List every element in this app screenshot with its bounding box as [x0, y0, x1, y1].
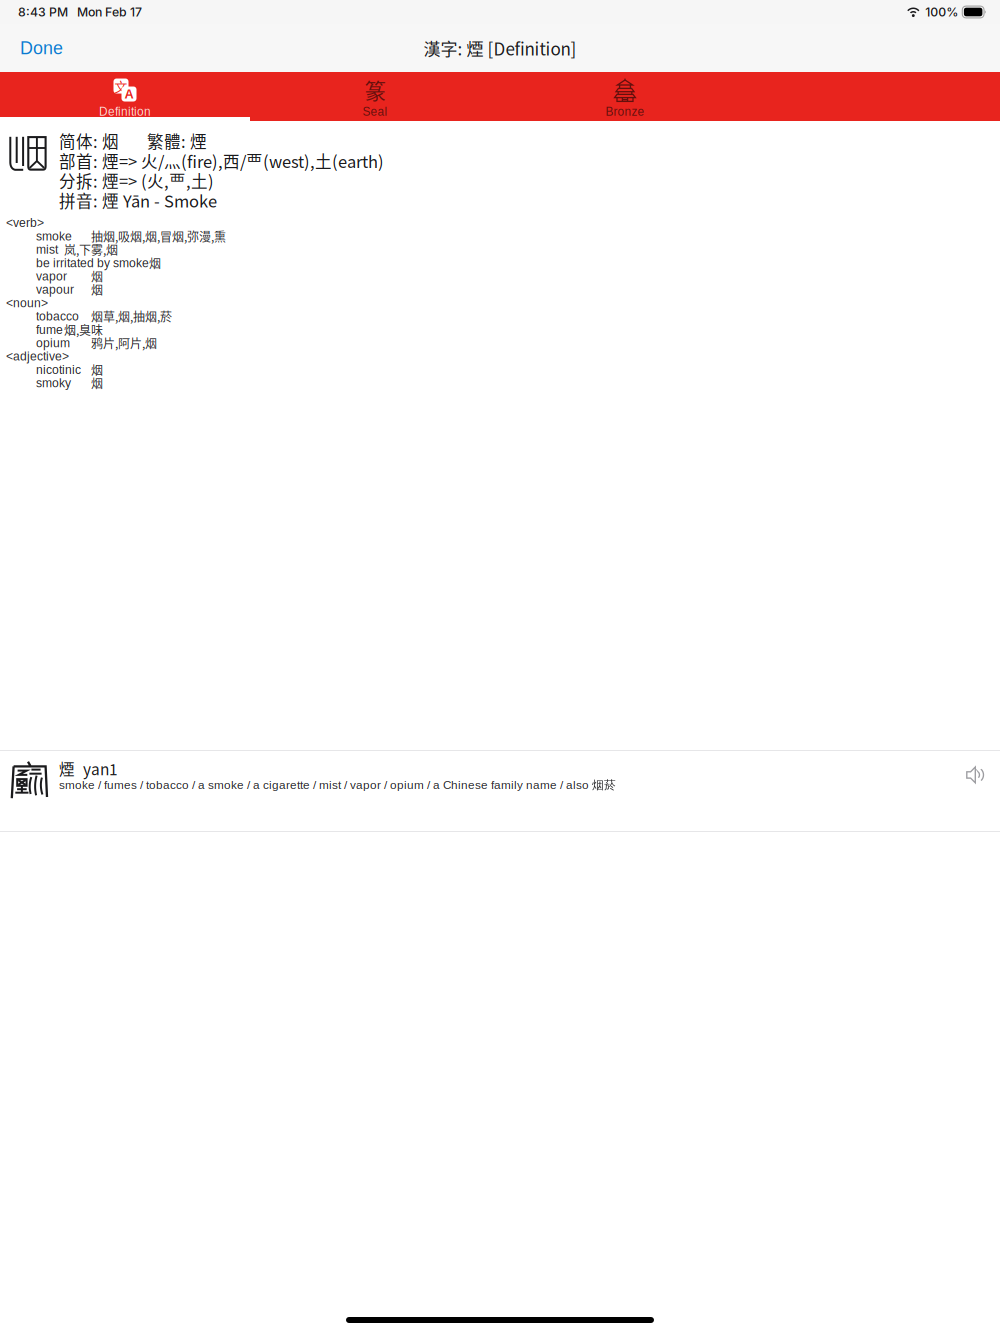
button[interactable]: 文 [0, 72, 250, 121]
staticText: 100% [925, 5, 958, 19]
staticText: vapor [36, 269, 67, 283]
staticText: 部首: 煙=> 火/灬(fire),西/覀(west),土(earth) [59, 149, 384, 173]
staticText: vapour [36, 283, 74, 296]
staticText: 烟 [149, 254, 161, 272]
staticText: 煙 yan1 [59, 757, 118, 780]
staticText: smoky [36, 376, 71, 390]
staticText: 篆 [364, 75, 385, 105]
staticText: Seal [362, 105, 387, 118]
staticText: fume [36, 323, 63, 336]
staticText: 岚,下雾,烟 [64, 241, 118, 258]
staticText: opium [36, 336, 70, 350]
button[interactable]: Done [0, 29, 77, 67]
staticText: Bronze [605, 105, 644, 118]
staticText: 鸦片,阿片,烟 [91, 334, 157, 352]
staticText: 简体: 烟 繁體: 煙 [59, 129, 207, 153]
staticText: nicotinic [36, 363, 81, 376]
button[interactable]: 篆 [250, 72, 500, 121]
staticText: 烟 [91, 361, 103, 378]
staticText: mist [36, 243, 58, 256]
staticText: A [124, 87, 133, 101]
staticText: 漢字: 煙 [Definition] [423, 36, 576, 60]
staticText: 分拆: 煙=> (火,覀,土) [59, 168, 214, 192]
staticText: be irritated by smoke [36, 256, 149, 270]
staticText: Definition [99, 105, 151, 118]
staticText: 抽烟,吸烟,烟,冒烟,弥漫,熏 [91, 227, 226, 245]
staticText: Mon Feb 17 [77, 5, 142, 19]
staticText: smoke / fumes / tobacco / a smoke / a ci… [59, 778, 616, 792]
staticText: 烟草,烟,抽烟,菸 [91, 308, 172, 325]
staticText: tobacco [36, 309, 79, 323]
staticText: 烟 [91, 374, 103, 392]
staticText: 拼音: 煙 Yān - Smoke [59, 188, 217, 212]
button[interactable]: Bronze [500, 72, 750, 121]
staticText: 烟 [91, 281, 103, 298]
button[interactable]: 煙 yan1 [0, 751, 1000, 831]
staticText: <adjective> [6, 350, 69, 363]
staticText: smoke [36, 229, 72, 243]
staticText: <verb> [6, 216, 44, 230]
staticText: 烟,臭味 [64, 321, 103, 338]
staticText: 文 [114, 77, 127, 95]
staticText: 8:43 PM [18, 5, 68, 19]
staticText: 烟 [91, 268, 103, 285]
staticText: Done [20, 38, 63, 58]
staticText: <noun> [6, 296, 48, 310]
